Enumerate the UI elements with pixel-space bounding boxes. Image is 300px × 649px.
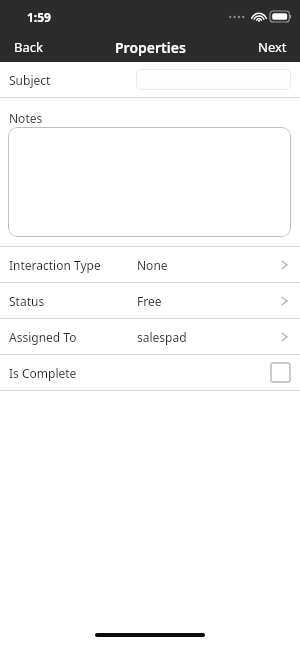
staticText: 1:59: [27, 9, 51, 25]
staticText: Notes: [9, 110, 43, 126]
button[interactable]: Notes field: [8, 127, 291, 237]
staticText: salespad: [137, 329, 187, 345]
staticText: Next: [258, 38, 287, 56]
button[interactable]: Subject: [0, 62, 300, 97]
staticText: Properties: [115, 38, 186, 57]
staticText: Back: [14, 38, 43, 56]
button[interactable]: Back: [0, 34, 57, 60]
staticText: Is Complete: [9, 365, 77, 381]
other: Is Complete checkbox: [270, 362, 291, 383]
button[interactable]: Interaction Type: [0, 247, 300, 282]
staticText: Assigned To: [9, 329, 77, 345]
button[interactable]: Status: [0, 283, 300, 318]
button[interactable]: Assigned To: [0, 319, 300, 354]
button[interactable]: Is Complete: [0, 355, 300, 390]
staticText: Status: [9, 293, 45, 309]
staticText: Interaction Type: [9, 257, 101, 273]
button[interactable]: Next: [245, 34, 300, 60]
staticText: Subject: [9, 72, 51, 88]
staticText: Free: [137, 293, 162, 309]
staticText: None: [137, 257, 168, 273]
